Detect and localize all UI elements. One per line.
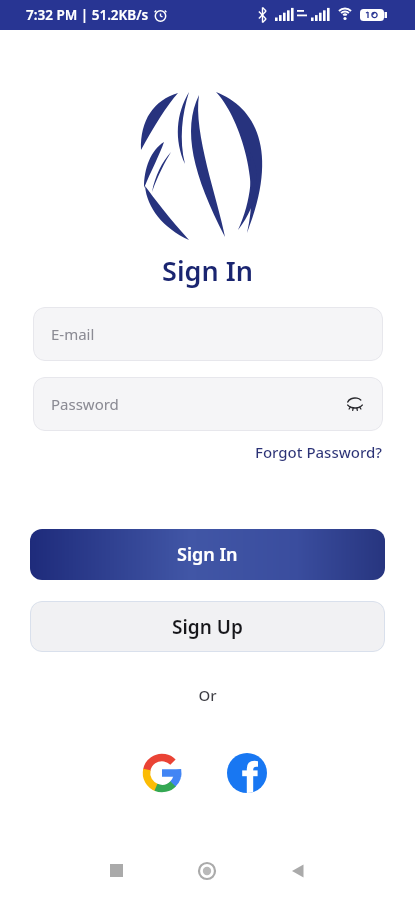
button[interactable]: Forgot Password?	[255, 442, 383, 462]
button[interactable]: Password	[33, 377, 383, 431]
staticText: Sign In	[177, 542, 238, 567]
staticText: Or	[0, 685, 415, 705]
button[interactable]	[195, 859, 219, 883]
button[interactable]	[142, 753, 182, 793]
staticText: 7:32 PM | 51.2KB/s	[26, 6, 149, 24]
staticText: Password	[51, 394, 119, 414]
staticText: E-mail	[51, 324, 95, 344]
staticText: Sign In	[0, 252, 415, 289]
button[interactable]: Sign In	[30, 529, 385, 580]
staticText: Sign Up	[172, 614, 243, 640]
button[interactable]: Sign Up	[30, 601, 385, 652]
button[interactable]: E-mail	[33, 307, 383, 361]
button[interactable]	[289, 862, 306, 879]
button[interactable]	[227, 753, 267, 793]
